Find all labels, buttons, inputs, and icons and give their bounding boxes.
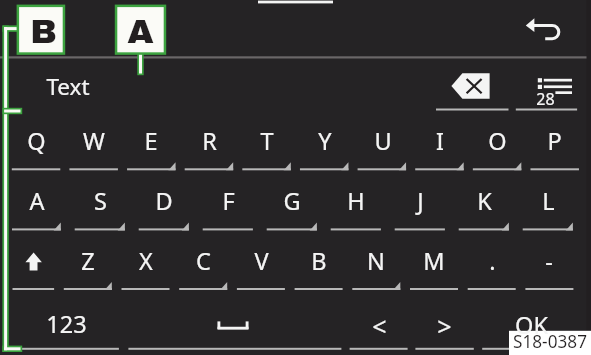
staticText: A	[29, 185, 45, 217]
staticText: X	[139, 245, 153, 277]
button[interactable]: Q	[12, 120, 61, 169]
staticText: R	[202, 125, 217, 157]
staticText: V	[254, 245, 269, 277]
staticText: OK	[515, 309, 548, 339]
staticText: Q	[27, 125, 46, 157]
staticText: W	[83, 125, 105, 157]
staticText: Z	[81, 245, 95, 277]
staticText: A	[127, 13, 154, 50]
staticText: G	[283, 185, 301, 217]
button[interactable]: T	[242, 120, 291, 169]
staticText: P	[547, 125, 562, 157]
staticText: Y	[318, 125, 332, 157]
staticText: H	[347, 185, 365, 217]
button[interactable]: W	[69, 120, 118, 169]
button[interactable]: C	[179, 238, 227, 289]
button[interactable]: E	[127, 120, 175, 169]
button[interactable]: Shift	[13, 238, 55, 289]
button[interactable]: L	[523, 178, 573, 229]
button[interactable]: U	[358, 120, 407, 169]
staticText: 28	[536, 88, 555, 108]
staticText: .	[489, 245, 496, 277]
button[interactable]: V	[237, 238, 285, 289]
staticText: N	[367, 245, 385, 277]
staticText: M	[423, 245, 445, 277]
button[interactable]: 123	[19, 300, 119, 349]
staticText: J	[417, 185, 424, 217]
button[interactable]: N	[352, 238, 400, 289]
button[interactable]: G	[267, 178, 317, 229]
button[interactable]	[482, 300, 578, 348]
staticText: F	[222, 185, 235, 217]
button[interactable]: P	[530, 120, 579, 169]
staticText: 123	[46, 308, 87, 340]
button[interactable]: D	[139, 178, 189, 229]
button[interactable]: A	[12, 178, 61, 229]
staticText: T	[260, 125, 274, 157]
button[interactable]: Space	[128, 300, 341, 349]
button[interactable]: Back	[520, 12, 570, 46]
button[interactable]: F	[203, 178, 253, 229]
staticText: B	[311, 245, 327, 277]
staticText: L	[542, 185, 555, 217]
button[interactable]: -	[525, 238, 573, 289]
staticText: O	[488, 125, 507, 157]
staticText: Text	[46, 71, 90, 99]
staticText: K	[477, 185, 492, 217]
staticText: E	[144, 125, 158, 157]
staticText: -	[545, 245, 553, 277]
button[interactable]: X	[122, 238, 170, 289]
staticText: D	[155, 185, 173, 217]
button[interactable]: H	[331, 178, 381, 229]
button[interactable]: B	[295, 238, 343, 289]
staticText: <	[372, 309, 387, 341]
button[interactable]: Next	[415, 300, 473, 349]
button[interactable]: O	[473, 120, 521, 169]
button[interactable]: R	[185, 120, 234, 169]
button[interactable]: .	[468, 238, 516, 289]
button[interactable]: S	[75, 178, 125, 229]
button[interactable]: Show list, 28 results	[516, 68, 577, 110]
button[interactable]: K	[459, 178, 509, 229]
staticText: C	[196, 245, 211, 277]
button[interactable]: I	[415, 120, 464, 169]
button[interactable]: J	[395, 178, 445, 229]
staticText: S18-0387	[513, 330, 587, 353]
staticText: S	[94, 185, 107, 217]
button[interactable]: Z	[64, 238, 112, 289]
button[interactable]: Y	[300, 120, 349, 169]
button[interactable]: M	[410, 238, 458, 289]
staticText: U	[374, 125, 392, 157]
button[interactable]: Backspace	[436, 68, 508, 110]
staticText: I	[436, 125, 444, 157]
staticText: B	[30, 13, 57, 50]
staticText: >	[437, 309, 452, 341]
button[interactable]: Previous	[350, 300, 408, 349]
